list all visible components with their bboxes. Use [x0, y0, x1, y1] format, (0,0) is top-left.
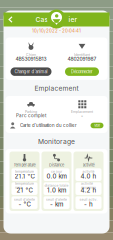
staticText: température	[15, 170, 34, 174]
staticText: température max	[15, 182, 34, 190]
staticText: 4802091987	[67, 56, 96, 62]
staticText: Parc complet	[16, 113, 46, 118]
staticText: - °C	[18, 201, 30, 208]
staticText: Cas	[35, 15, 48, 24]
staticText: Chien	[26, 53, 36, 57]
staticText: ce jour	[51, 170, 62, 174]
staticText: activité moyenne	[81, 182, 96, 190]
staticText: 4.0 h	[80, 173, 96, 180]
staticText: Carte d'utilisation du collier	[20, 123, 77, 128]
staticText: - h	[84, 201, 93, 208]
staticText: 0.0 km	[46, 173, 66, 180]
staticText: seuil activ.	[79, 198, 97, 202]
staticText: 21.1 °C	[14, 173, 34, 180]
button[interactable]: Changer d'animal	[10, 67, 51, 76]
staticText: Monitorage	[38, 137, 75, 146]
staticText: 21 °C	[16, 187, 32, 194]
staticText: activité	[82, 170, 94, 174]
staticText: distance totale	[44, 184, 68, 188]
staticText: -	[81, 113, 83, 118]
staticText: seuil d'alerte	[46, 198, 67, 202]
staticText: Identifiant	[74, 53, 90, 57]
button[interactable]: Carte d'utilisation du collier	[9, 122, 103, 129]
staticText: Emplacement	[71, 110, 93, 114]
staticText: Changer d'animal	[14, 69, 47, 74]
button[interactable]: Déconnecter	[65, 67, 99, 76]
staticText: 4B530915B13	[15, 56, 46, 62]
staticText: Déconnecter	[71, 69, 93, 74]
staticText: ier	[68, 15, 77, 24]
staticText: Parking	[25, 110, 37, 114]
staticText: 4.2 h	[80, 187, 96, 194]
staticText: Distance	[49, 162, 64, 167]
staticText: 1.0 km	[47, 187, 66, 194]
staticText: Emplacement	[34, 84, 78, 92]
staticText: 10/10/2022 - 20:04:41	[32, 28, 81, 34]
staticText: Température	[13, 162, 35, 167]
staticText: Voir	[94, 123, 100, 128]
staticText: seuil d'alerte	[14, 198, 35, 202]
staticText: - km	[50, 201, 63, 208]
button[interactable]: Retour	[3, 12, 17, 26]
staticText: activité	[82, 162, 94, 167]
